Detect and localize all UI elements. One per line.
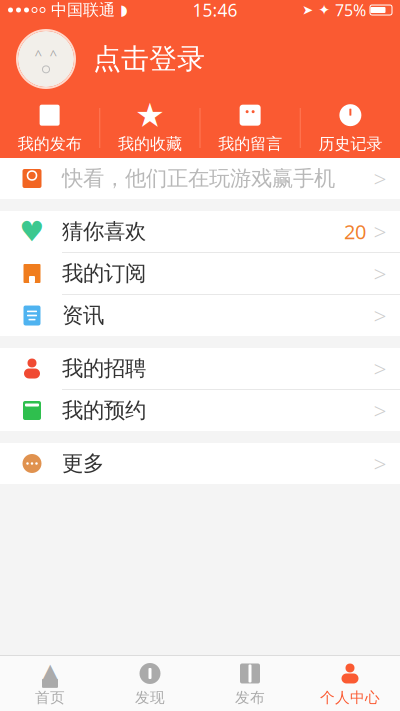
staticText: 我的预约 bbox=[62, 397, 146, 424]
staticText: > bbox=[373, 216, 386, 246]
button[interactable]: 快看，他们正在玩游戏赢手机 bbox=[0, 158, 400, 199]
staticText: 我的收藏 bbox=[118, 134, 182, 154]
staticText: ♥ bbox=[19, 216, 44, 247]
staticText: > bbox=[373, 258, 386, 288]
staticText: ➤ bbox=[302, 2, 313, 17]
button[interactable]: 我的留言 bbox=[200, 92, 300, 164]
staticText: 首页 bbox=[35, 688, 65, 706]
button[interactable]: 我的招聘 bbox=[0, 348, 400, 390]
staticText: > bbox=[373, 448, 386, 478]
button[interactable]: 我的订阅 bbox=[0, 253, 400, 295]
staticText: 我的订阅 bbox=[62, 260, 146, 287]
button[interactable]: 发布 bbox=[200, 654, 300, 711]
staticText: 猜你喜欢 bbox=[62, 218, 146, 245]
button[interactable]: 我的发布 bbox=[0, 92, 99, 164]
staticText: 更多 bbox=[62, 450, 104, 477]
staticText: 发现 bbox=[135, 688, 165, 706]
staticText: 发布 bbox=[235, 688, 265, 706]
button[interactable]: 我的预约 bbox=[0, 390, 400, 431]
button[interactable]: ♥ bbox=[0, 211, 400, 253]
staticText: 我的发布 bbox=[18, 134, 82, 154]
button[interactable]: 更多 bbox=[0, 443, 400, 484]
staticText: ★ bbox=[135, 96, 165, 134]
staticText: ^ bbox=[49, 45, 57, 63]
staticText: 历史记录 bbox=[318, 134, 382, 154]
staticText: 中国联通 bbox=[51, 0, 115, 20]
staticText: ◗ bbox=[120, 2, 128, 18]
button[interactable]: 资讯 bbox=[0, 295, 400, 336]
staticText: > bbox=[373, 300, 386, 330]
staticText: > bbox=[373, 163, 386, 193]
button[interactable]: ^ bbox=[0, 20, 400, 98]
button[interactable]: ▲ bbox=[0, 654, 100, 711]
staticText: 我的留言 bbox=[218, 134, 282, 154]
button[interactable]: 发现 bbox=[100, 654, 200, 711]
staticText: 快看，他们正在玩游戏赢手机 bbox=[62, 165, 335, 192]
staticText: 20 bbox=[344, 218, 366, 245]
staticText: > bbox=[373, 353, 386, 383]
staticText: ▲ bbox=[42, 659, 57, 682]
staticText: 资讯 bbox=[62, 302, 104, 329]
staticText: 点击登录 bbox=[93, 42, 205, 76]
staticText: 15:46 bbox=[192, 0, 237, 21]
staticText: ^ bbox=[34, 45, 42, 63]
button[interactable]: 个人中心 bbox=[300, 654, 400, 711]
staticText: > bbox=[373, 395, 386, 425]
staticText: 75% bbox=[335, 0, 366, 21]
staticText: 我的招聘 bbox=[62, 355, 146, 382]
staticText: ✦ bbox=[318, 2, 330, 18]
button[interactable]: 历史记录 bbox=[301, 92, 400, 164]
staticText: 个人中心 bbox=[320, 688, 380, 706]
button[interactable]: ★ bbox=[100, 92, 199, 164]
